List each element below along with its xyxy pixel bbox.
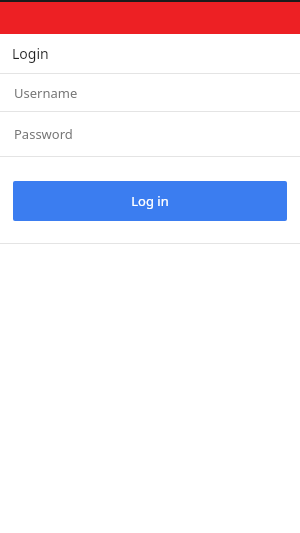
staticText: Username [14, 84, 78, 102]
button[interactable]: Log in [13, 181, 287, 221]
staticText: Login [12, 44, 49, 63]
button[interactable]: Password [0, 112, 300, 156]
staticText: Password [14, 125, 73, 143]
staticText: Log in [131, 192, 169, 210]
button[interactable]: Username [0, 74, 300, 111]
